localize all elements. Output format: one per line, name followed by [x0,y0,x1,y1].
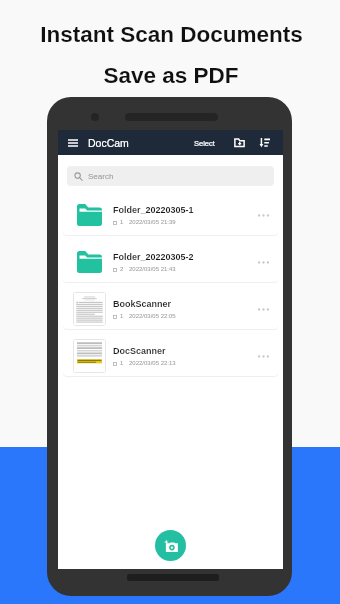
button[interactable]: Scan document [155,530,186,561]
staticText: DocCam [88,137,129,149]
button[interactable]: BookScanner [63,289,278,329]
staticText: 2022/03/05 22:05 [129,313,176,320]
staticText: 2022/03/05 22:13 [129,360,176,367]
staticText: Select [194,139,215,147]
button[interactable]: Menu [63,133,83,153]
button[interactable]: DocScanner [63,336,278,376]
button[interactable]: More options [254,253,272,271]
staticText: DocScanner [113,346,166,356]
staticText: Save as PDF [103,63,239,88]
staticText: 2022/03/05 21:39 [129,219,176,226]
staticText: 2022/03/05 21:43 [129,266,176,273]
staticText: 1 [120,360,124,367]
staticText: Folder_20220305-1 [113,205,194,215]
staticText: Search [88,172,114,181]
button[interactable]: Folder_20220305-2 [63,242,278,282]
button[interactable]: Sort [256,134,273,151]
button[interactable]: Search [67,166,274,186]
staticText: BookScanner [113,299,172,309]
button[interactable]: More options [254,206,272,224]
button[interactable]: More options [254,300,272,318]
staticText: 1 [120,219,124,226]
button[interactable]: More options [254,347,272,365]
staticText: 1 [120,313,124,320]
staticText: 2 [120,266,124,273]
button[interactable]: New folder [231,134,248,151]
button[interactable]: Select [191,135,218,151]
staticText: Folder_20220305-2 [113,252,194,262]
staticText: Instant Scan Documents [40,22,303,47]
button[interactable]: Folder_20220305-1 [63,195,278,235]
